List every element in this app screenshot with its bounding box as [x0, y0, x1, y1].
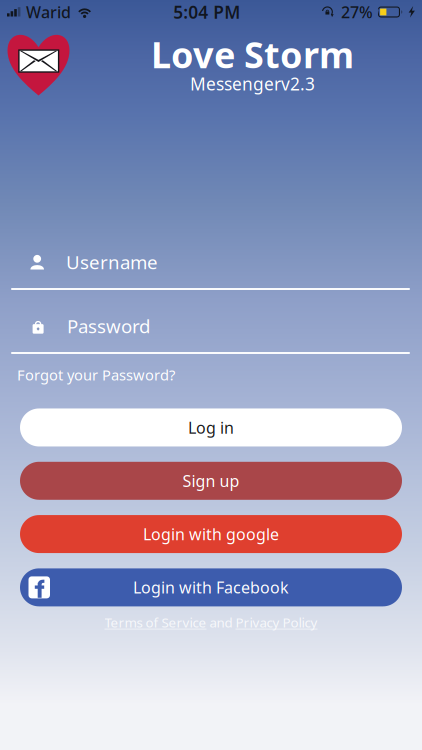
staticText: Username	[66, 250, 158, 274]
staticText: Warid	[26, 1, 71, 23]
staticText: Password	[67, 314, 150, 338]
staticText: Terms of Service	[104, 613, 206, 631]
staticText: and	[206, 613, 235, 631]
staticText: Messengerv2.3	[190, 72, 315, 95]
button[interactable]: Login with Facebook	[20, 568, 402, 606]
button[interactable]: Log in	[20, 408, 402, 446]
staticText: 27%	[341, 1, 373, 23]
button[interactable]: Privacy Policy	[235, 613, 317, 631]
staticText: Privacy Policy	[235, 613, 317, 631]
staticText: Login with Facebook	[133, 577, 289, 598]
staticText: Log in	[188, 417, 234, 438]
button[interactable]: Login with google	[20, 515, 402, 553]
staticText: 5:04 PM	[173, 0, 240, 23]
button[interactable]: Forgot your Password?	[17, 363, 175, 386]
staticText: Sign up	[182, 470, 239, 491]
staticText: Forgot your Password?	[17, 365, 175, 384]
staticText: Login with google	[143, 523, 279, 545]
staticText: Love Storm	[151, 30, 354, 78]
button[interactable]: Terms of Service	[104, 613, 206, 631]
button[interactable]: Sign up	[20, 462, 402, 500]
